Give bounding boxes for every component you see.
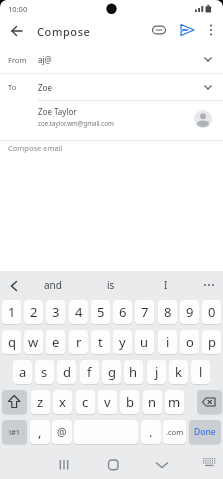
button[interactable]: a xyxy=(13,360,32,384)
button[interactable] xyxy=(54,453,74,473)
button[interactable]: s xyxy=(35,360,54,384)
button[interactable]: Zoe Taylor xyxy=(0,101,223,140)
button[interactable]: From xyxy=(0,46,223,73)
button[interactable]: I xyxy=(140,271,192,299)
button[interactable]: v xyxy=(98,390,117,414)
staticText: k xyxy=(175,363,182,381)
staticText: r xyxy=(76,333,82,351)
staticText: u xyxy=(140,333,149,351)
button[interactable]: t xyxy=(91,330,110,354)
button[interactable] xyxy=(204,22,218,38)
button[interactable] xyxy=(152,453,172,473)
staticText: c xyxy=(82,393,89,411)
button[interactable]: 4 xyxy=(69,300,88,324)
staticText: I xyxy=(164,278,168,292)
button[interactable] xyxy=(197,390,222,414)
button[interactable]: 2 xyxy=(24,300,43,324)
staticText: 8 xyxy=(164,303,172,321)
staticText: zoe.taylor.wm@gmail.com xyxy=(38,119,114,127)
button[interactable] xyxy=(178,22,196,38)
button[interactable]: is xyxy=(82,271,140,299)
staticText: 0 xyxy=(208,303,216,321)
button[interactable]: and xyxy=(24,271,82,299)
staticText: To xyxy=(8,82,17,92)
staticText: j xyxy=(155,363,159,381)
button[interactable]: 7 xyxy=(135,300,154,324)
staticText: q xyxy=(8,333,16,351)
staticText: 7 xyxy=(141,303,149,321)
button[interactable]: @ xyxy=(52,420,72,444)
staticText: !#1 xyxy=(9,427,21,437)
button[interactable]: g xyxy=(102,360,121,384)
button[interactable]: p xyxy=(202,330,221,354)
staticText: Compose email xyxy=(8,143,63,153)
staticText: w xyxy=(28,333,39,351)
staticText: a xyxy=(19,363,27,381)
button[interactable]: r xyxy=(69,330,88,354)
button[interactable]: m xyxy=(165,390,184,414)
button[interactable]: u xyxy=(135,330,154,354)
button[interactable]: q xyxy=(2,330,21,354)
staticText: 6 xyxy=(119,303,127,321)
staticText: z xyxy=(37,393,44,411)
button[interactable]: j xyxy=(147,360,166,384)
button[interactable]: k xyxy=(169,360,188,384)
button[interactable]: To xyxy=(0,74,223,100)
button[interactable]: y xyxy=(113,330,132,354)
button[interactable]: 5 xyxy=(91,300,110,324)
staticText: 4 xyxy=(75,303,83,321)
button[interactable]: n xyxy=(143,390,162,414)
button[interactable]: d xyxy=(57,360,76,384)
button[interactable]: f xyxy=(80,360,99,384)
staticText: h xyxy=(129,363,138,381)
button[interactable]: 6 xyxy=(113,300,132,324)
staticText: .com xyxy=(166,427,184,437)
button[interactable]: l xyxy=(191,360,210,384)
staticText: g xyxy=(108,363,116,381)
staticText: x xyxy=(59,393,66,411)
button[interactable]: 3 xyxy=(46,300,65,324)
button[interactable]: , xyxy=(30,420,50,444)
staticText: Zoe xyxy=(38,82,52,93)
button[interactable] xyxy=(150,23,168,37)
button[interactable] xyxy=(6,22,26,40)
button[interactable] xyxy=(103,453,123,473)
button[interactable]: .com xyxy=(163,420,186,444)
staticText: Zoe Taylor xyxy=(38,106,77,117)
staticText: Compose xyxy=(37,24,91,39)
staticText: e xyxy=(52,333,60,351)
button[interactable]: w xyxy=(24,330,43,354)
staticText: @ xyxy=(57,425,67,439)
button[interactable]: h xyxy=(124,360,143,384)
button[interactable]: 8 xyxy=(158,300,177,324)
button[interactable]: i xyxy=(158,330,177,354)
button[interactable]: 0 xyxy=(202,300,221,324)
button[interactable]: z xyxy=(31,390,50,414)
button[interactable]: Done xyxy=(189,420,221,444)
button[interactable]: . xyxy=(141,420,161,444)
staticText: f xyxy=(87,363,92,381)
staticText: 1 xyxy=(8,303,16,321)
staticText: i xyxy=(166,333,170,351)
button[interactable] xyxy=(2,390,27,414)
button[interactable]: 9 xyxy=(180,300,199,324)
button[interactable]: b xyxy=(120,390,139,414)
staticText: is xyxy=(107,278,115,292)
staticText: , xyxy=(38,423,42,441)
staticText: Done xyxy=(194,426,216,438)
staticText: b xyxy=(126,393,134,411)
staticText: 9 xyxy=(186,303,194,321)
button[interactable]: x xyxy=(53,390,72,414)
button[interactable]: !#1 xyxy=(2,420,27,444)
button[interactable]: o xyxy=(180,330,199,354)
staticText: From xyxy=(8,55,27,65)
staticText: p xyxy=(208,333,216,351)
staticText: s xyxy=(41,363,48,381)
button[interactable]: 1 xyxy=(2,300,21,324)
staticText: v xyxy=(104,393,111,411)
button[interactable]: e xyxy=(46,330,65,354)
button[interactable]: c xyxy=(76,390,95,414)
button[interactable] xyxy=(200,454,218,470)
staticText: and xyxy=(44,278,62,292)
